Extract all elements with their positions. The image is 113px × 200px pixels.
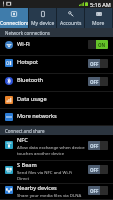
staticText: OFF xyxy=(90,61,99,67)
button[interactable]: OFF xyxy=(88,59,108,68)
staticText: More networks xyxy=(17,112,57,120)
staticText: S Beam xyxy=(17,161,37,169)
button[interactable]: OFF xyxy=(88,77,108,86)
button[interactable]: Nearby devices xyxy=(0,184,113,200)
staticText: Share your media files via DLNA xyxy=(17,192,82,198)
other: More xyxy=(96,11,102,17)
staticText: OFF xyxy=(90,79,99,85)
button[interactable]: Wi-Fi xyxy=(0,37,113,56)
staticText: OFF xyxy=(90,143,99,149)
staticText: OFF xyxy=(90,167,99,173)
staticText: OFF xyxy=(90,188,99,194)
button[interactable]: OFF xyxy=(88,141,108,150)
button[interactable]: ON xyxy=(88,40,108,49)
staticText: ON xyxy=(98,42,106,48)
staticText: NFC xyxy=(17,136,28,144)
button[interactable]: More xyxy=(85,8,113,28)
other: Connections xyxy=(11,11,17,17)
button[interactable]: OFF xyxy=(88,186,108,195)
button[interactable]: Bluetooth xyxy=(0,74,113,92)
button[interactable]: My device xyxy=(29,8,57,28)
staticText: Bluetooth xyxy=(17,76,43,84)
staticText: Connections xyxy=(0,20,28,27)
button[interactable]: Data usage xyxy=(0,92,113,109)
button[interactable]: OFF xyxy=(88,165,108,174)
staticText: 5:16 AM xyxy=(90,1,111,8)
staticText: Network connections xyxy=(5,30,50,36)
staticText: Send files via NFC and Wi-Fi Direct xyxy=(17,169,85,181)
button[interactable]: Accounts xyxy=(57,8,85,28)
other: My device xyxy=(40,11,46,17)
staticText: Connect and share xyxy=(5,128,45,134)
staticText: Hotspot xyxy=(17,58,39,66)
button[interactable]: Hotspot xyxy=(0,56,113,74)
staticText: Data usage xyxy=(17,95,47,103)
button[interactable]: Connections xyxy=(0,8,29,28)
other: Accounts xyxy=(68,11,74,17)
staticText: Wi-Fi xyxy=(17,40,30,48)
staticText: More xyxy=(92,20,105,27)
staticText: Accounts xyxy=(60,20,82,27)
staticText: My device xyxy=(31,20,55,27)
button[interactable]: More networks xyxy=(0,109,113,126)
button[interactable]: S Beam xyxy=(0,161,113,184)
button[interactable]: NFC xyxy=(0,135,113,161)
staticText: Allow data exchange when device touches … xyxy=(17,144,85,156)
staticText: Nearby devices xyxy=(17,184,57,192)
